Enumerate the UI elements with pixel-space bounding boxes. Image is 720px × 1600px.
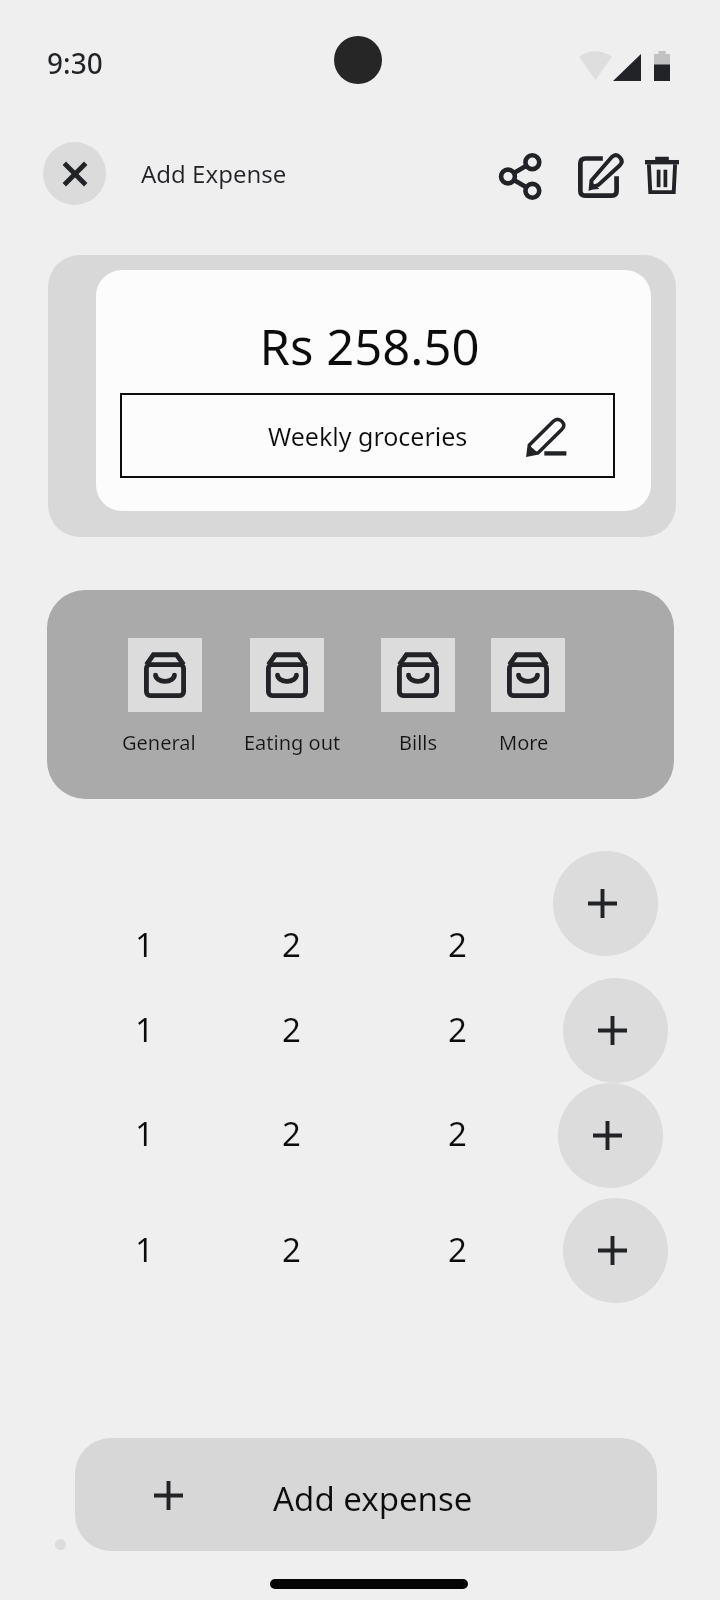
button[interactable]: Add bbox=[558, 1083, 663, 1188]
staticText: 2 bbox=[448, 1227, 467, 1272]
button[interactable]: Delete bbox=[632, 146, 692, 204]
staticText: 1 bbox=[135, 1227, 154, 1272]
staticText: 2 bbox=[448, 1007, 467, 1052]
staticText: Bills bbox=[399, 729, 438, 756]
button[interactable]: Add bbox=[563, 1198, 668, 1303]
staticText: 1 bbox=[135, 1111, 154, 1156]
button[interactable]: Weekly groceries bbox=[120, 393, 615, 478]
button[interactable]: 2 bbox=[251, 1217, 331, 1281]
button[interactable]: Share bbox=[490, 146, 552, 206]
button[interactable]: 1 bbox=[104, 1217, 184, 1281]
button[interactable]: Bills bbox=[368, 632, 468, 764]
staticText: Add Expense bbox=[141, 157, 287, 190]
button[interactable]: 1 bbox=[104, 997, 184, 1061]
staticText: Weekly groceries bbox=[268, 419, 468, 453]
button[interactable]: General bbox=[115, 632, 215, 764]
button[interactable]: Add bbox=[563, 978, 668, 1083]
button[interactable]: 1 bbox=[104, 1101, 184, 1165]
staticText: 2 bbox=[448, 922, 467, 967]
button[interactable]: More bbox=[478, 632, 578, 764]
button[interactable]: 2 bbox=[417, 997, 497, 1061]
staticText: 2 bbox=[282, 1227, 301, 1272]
staticText: Add expense bbox=[273, 1476, 473, 1521]
staticText: 1 bbox=[135, 922, 154, 967]
staticText: Eating out bbox=[244, 729, 341, 756]
button[interactable]: Eating out bbox=[237, 632, 337, 764]
button[interactable]: Add expense bbox=[75, 1438, 657, 1551]
staticText: 1 bbox=[135, 1007, 154, 1052]
staticText: 9:30 bbox=[47, 44, 103, 82]
button[interactable]: 2 bbox=[251, 912, 331, 976]
button[interactable]: 2 bbox=[417, 1217, 497, 1281]
staticText: 2 bbox=[448, 1111, 467, 1156]
staticText: 2 bbox=[282, 922, 301, 967]
button[interactable]: 2 bbox=[417, 912, 497, 976]
button[interactable]: 1 bbox=[104, 912, 184, 976]
staticText: 2 bbox=[282, 1007, 301, 1052]
button[interactable]: 2 bbox=[251, 997, 331, 1061]
button[interactable]: Add bbox=[553, 851, 658, 956]
staticText: General bbox=[122, 729, 196, 756]
button[interactable]: Close bbox=[43, 142, 106, 205]
button[interactable]: Edit bbox=[570, 145, 630, 205]
staticText: More bbox=[499, 729, 549, 756]
button[interactable]: 2 bbox=[251, 1101, 331, 1165]
staticText: 2 bbox=[282, 1111, 301, 1156]
button[interactable]: 2 bbox=[417, 1101, 497, 1165]
staticText: Rs 258.50 bbox=[96, 313, 647, 380]
